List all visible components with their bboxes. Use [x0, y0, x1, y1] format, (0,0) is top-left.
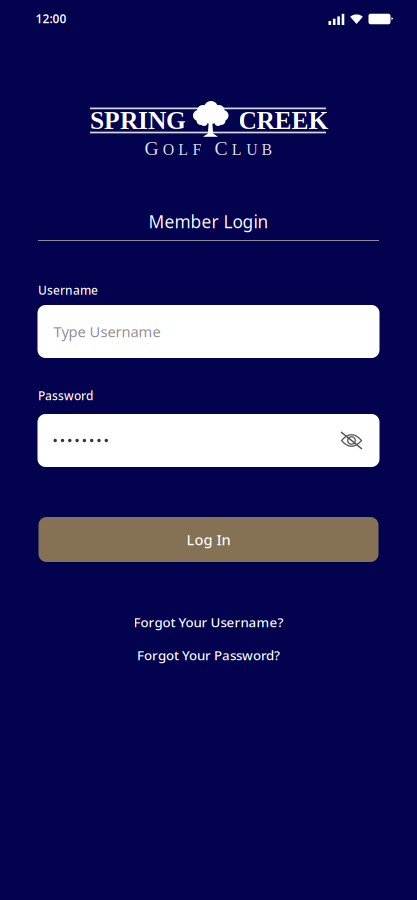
staticText: U [246, 141, 257, 158]
staticText: G [144, 138, 158, 159]
button[interactable] [339, 430, 363, 450]
button[interactable]: Log In [38, 517, 378, 562]
staticText: L [232, 141, 242, 158]
button[interactable] [37, 414, 379, 467]
button[interactable]: Type Username [37, 305, 379, 358]
staticText: Username [38, 282, 98, 298]
staticText: F [193, 141, 202, 158]
staticText: Member Login [148, 210, 268, 233]
staticText: L [178, 141, 188, 158]
staticText: Password [38, 387, 93, 403]
staticText: 12:00 [35, 10, 66, 26]
button[interactable]: Forgot Your Password? [137, 646, 280, 664]
staticText: Log In [186, 530, 230, 549]
staticText: CREEK [238, 106, 328, 135]
staticText: B [262, 141, 273, 158]
staticText: Type Username [53, 322, 160, 341]
button[interactable]: Forgot Your Username? [133, 613, 283, 631]
staticText: C [214, 138, 227, 159]
staticText: Forgot Your Password? [137, 646, 280, 664]
staticText: Forgot Your Username? [133, 613, 283, 631]
staticText: SPRING [90, 106, 186, 135]
staticText: O [163, 141, 174, 158]
